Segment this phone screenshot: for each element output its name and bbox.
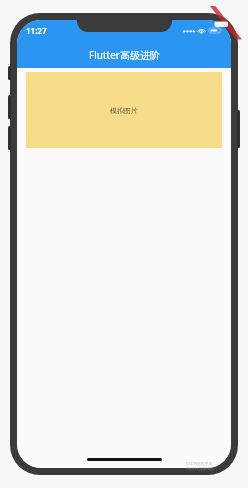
staticText: CSDN@程序员: [186, 461, 213, 466]
staticText: 11:27: [26, 25, 47, 36]
button[interactable]: Flutter高级进阶: [17, 41, 231, 68]
staticText: 模拟图片: [110, 106, 138, 115]
button[interactable]: 模拟图片: [26, 72, 222, 148]
staticText: Flutter高级进阶: [186, 466, 215, 471]
staticText: Flutter高级进阶: [89, 48, 160, 62]
